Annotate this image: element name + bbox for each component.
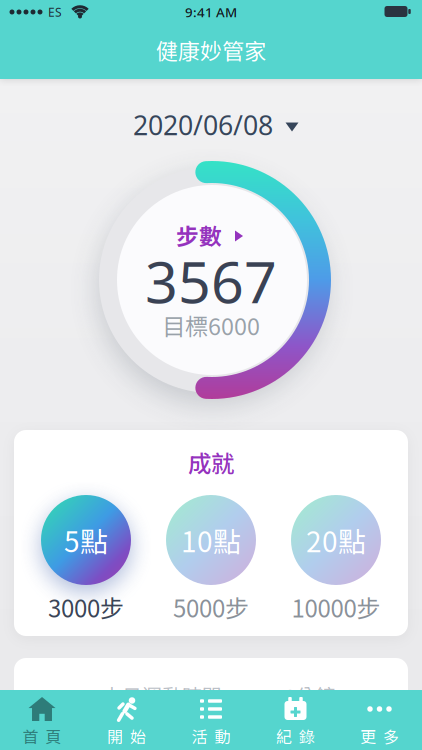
button[interactable]: 本日運動時間	[0, 0, 422, 750]
button[interactable]: 首 頁	[0, 0, 422, 750]
staticText: 3000步	[48, 590, 124, 624]
button[interactable]: 步數	[0, 0, 422, 750]
staticText: 紀 錄	[276, 724, 315, 748]
staticText: 活 動	[191, 724, 230, 748]
staticText: 成就	[188, 445, 234, 479]
button[interactable]: 20點	[0, 0, 422, 750]
staticText: 0分鐘	[284, 680, 335, 709]
button[interactable]: 開 始	[0, 0, 422, 750]
button[interactable]: 活 動	[0, 0, 422, 750]
staticText: 2020/06/08	[133, 107, 273, 143]
staticText: 5點	[64, 520, 108, 560]
staticText: 10000步	[291, 590, 380, 624]
staticText: 步數	[176, 219, 222, 251]
staticText: 開 始	[107, 724, 146, 748]
staticText: 3567	[145, 243, 277, 319]
button[interactable]: 5點	[0, 0, 422, 750]
staticText: 本日運動時間	[102, 680, 222, 709]
staticText: 9:41 AM	[185, 3, 237, 21]
staticText: 首 頁	[22, 724, 61, 748]
staticText: ES	[48, 4, 62, 20]
staticText: 20點	[306, 520, 366, 560]
button[interactable]: 2020/06/08	[0, 0, 422, 750]
button[interactable]: 10點	[0, 0, 422, 750]
button[interactable]: 更 多	[0, 0, 422, 750]
staticText: 更 多	[360, 724, 399, 748]
staticText: 10點	[181, 520, 241, 560]
staticText: 目標6000	[162, 308, 260, 342]
staticText: 健康妙管家	[156, 34, 266, 66]
staticText: 5000步	[173, 590, 249, 624]
button[interactable]: 紀 錄	[0, 0, 422, 750]
